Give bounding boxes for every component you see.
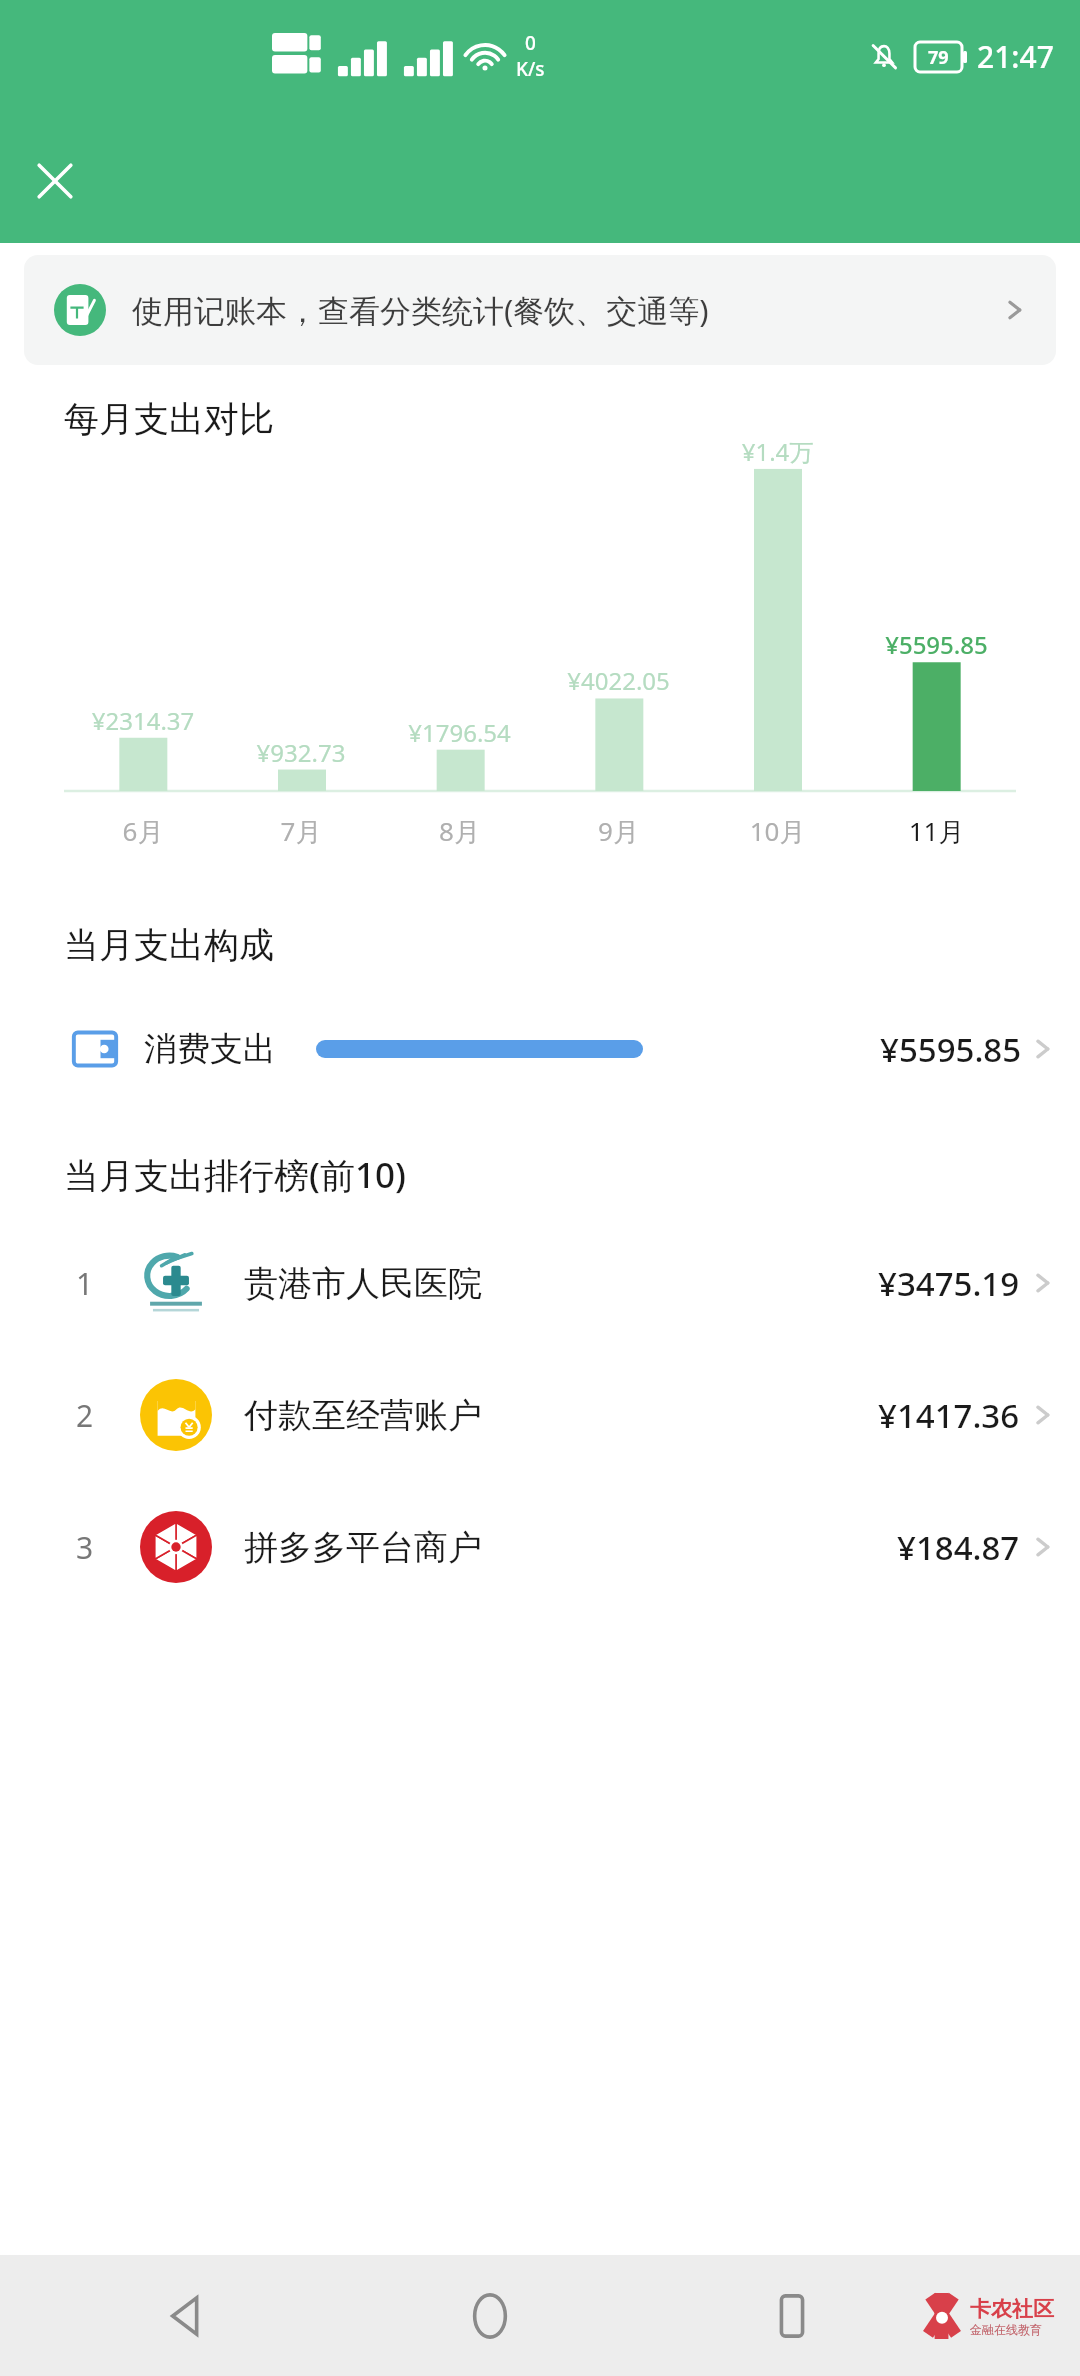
staticText: 1: [76, 1263, 94, 1304]
staticText: 11月: [857, 813, 1016, 849]
staticText: 8月: [380, 813, 539, 849]
staticText: ¥3475.19: [878, 1261, 1020, 1306]
button[interactable]: 3: [0, 1501, 1080, 1593]
staticText: ¥932.73: [222, 736, 380, 769]
staticText: 10月: [698, 813, 857, 849]
staticText: 2: [76, 1395, 94, 1436]
staticText: ¥5595.85: [857, 628, 1016, 661]
staticText: ¥4022.05: [539, 664, 698, 697]
button[interactable]: Close: [22, 148, 88, 214]
button[interactable]: Back: [140, 2268, 236, 2364]
staticText: 9月: [539, 813, 698, 849]
staticText: 当月支出构成: [64, 923, 274, 967]
button[interactable]: 消费支出: [0, 1005, 1080, 1093]
staticText: K/s: [516, 56, 545, 82]
staticText: 当月支出排行榜(前10): [64, 1151, 406, 1199]
staticText: ¥184.87: [897, 1525, 1020, 1570]
staticText: ¥5595.85: [880, 1027, 1022, 1072]
staticText: 付款至经营账户: [244, 1394, 482, 1437]
staticText: 消费支出: [144, 1028, 276, 1070]
staticText: 79: [928, 45, 949, 70]
staticText: 金融在线教育: [970, 2322, 1042, 2337]
staticText: 拼多多平台商户: [244, 1526, 482, 1569]
staticText: ¥1796.54: [380, 716, 539, 749]
button[interactable]: Recents: [744, 2268, 840, 2364]
staticText: 0: [525, 30, 536, 56]
staticText: 贵港市人民医院: [244, 1262, 482, 1305]
staticText: 使用记账本，查看分类统计(餐饮、交通等): [132, 289, 1000, 331]
staticText: 7月: [222, 813, 380, 849]
staticText: 6月: [64, 813, 222, 849]
button[interactable]: 2: [0, 1369, 1080, 1461]
button[interactable]: 使用记账本，查看分类统计(餐饮、交通等): [24, 255, 1056, 365]
staticText: ¥1417.36: [878, 1393, 1020, 1438]
button[interactable]: 1: [0, 1237, 1080, 1329]
staticText: 每月支出对比: [64, 397, 274, 441]
staticText: ¥2314.37: [64, 704, 222, 737]
staticText: ¥1.4万: [698, 435, 857, 468]
staticText: 21:47: [977, 36, 1054, 77]
button[interactable]: Home: [442, 2268, 538, 2364]
staticText: 3: [76, 1527, 94, 1568]
staticText: 卡农社区: [970, 2296, 1054, 2322]
